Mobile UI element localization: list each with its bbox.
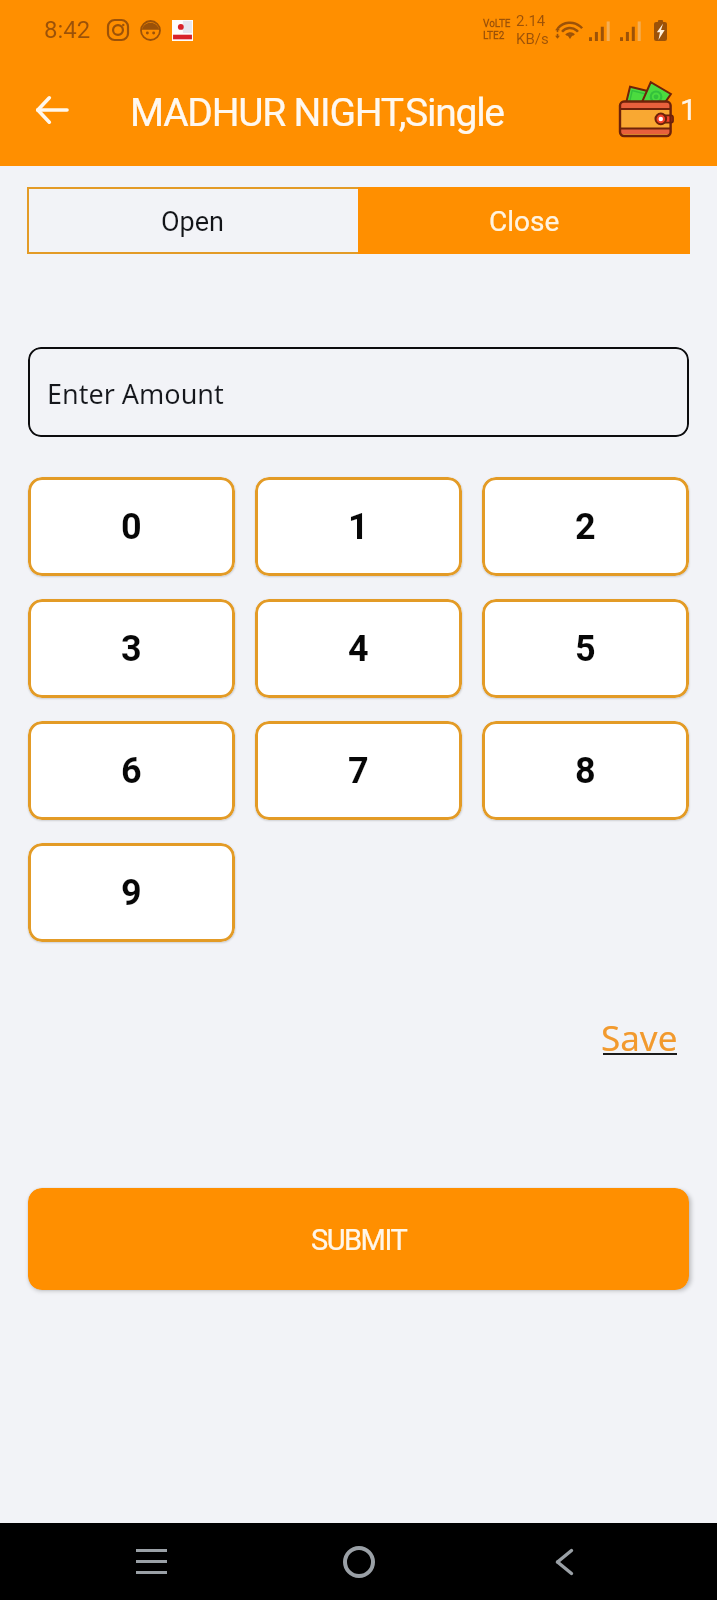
button[interactable]: 9 <box>28 843 235 942</box>
button[interactable]: Home <box>239 1523 478 1600</box>
button[interactable]: Recent apps <box>0 1523 239 1600</box>
staticText: KB/s <box>516 30 549 48</box>
button[interactable]: 2 <box>482 477 689 576</box>
button[interactable]: 4 <box>255 599 462 698</box>
button[interactable]: Open <box>27 187 358 254</box>
button[interactable]: 7 <box>255 721 462 820</box>
staticText: MADHUR NIGHT,Single <box>130 90 504 136</box>
staticText: 2 <box>575 506 596 548</box>
staticText: LTE2 <box>483 30 505 42</box>
button[interactable]: Back <box>478 1523 717 1600</box>
staticText: VoLTE <box>483 18 511 30</box>
staticText: Open <box>161 206 224 238</box>
staticText: 0 <box>121 506 142 548</box>
button[interactable]: 3 <box>28 599 235 698</box>
button[interactable]: Back <box>21 83 81 143</box>
button[interactable]: SUBMIT <box>28 1188 689 1290</box>
staticText: 9 <box>121 872 142 914</box>
button[interactable]: 6 <box>28 721 235 820</box>
staticText: 2.14 <box>516 12 546 30</box>
staticText: 4 <box>348 628 369 670</box>
button[interactable]: 0 <box>28 477 235 576</box>
button[interactable]: Enter Amount <box>28 347 689 437</box>
button[interactable]: 1 <box>255 477 462 576</box>
staticText: 7 <box>348 750 369 792</box>
staticText: 5 <box>575 628 596 670</box>
staticText: 8:42 <box>44 16 91 44</box>
button[interactable]: 5 <box>482 599 689 698</box>
staticText: Save <box>601 1014 678 1062</box>
staticText: Enter Amount <box>47 375 224 412</box>
staticText: 1 <box>680 92 697 127</box>
staticText: 1 <box>348 506 369 548</box>
staticText: 8 <box>575 750 596 792</box>
staticText: 3 <box>121 628 142 670</box>
button[interactable]: 8 <box>482 721 689 820</box>
button[interactable]: Wallet <box>620 85 697 141</box>
button[interactable]: Close <box>358 187 690 254</box>
staticText: 6 <box>121 750 142 792</box>
staticText: SUBMIT <box>311 1223 407 1257</box>
button[interactable]: Save <box>601 1014 678 1062</box>
staticText: Close <box>489 205 560 238</box>
